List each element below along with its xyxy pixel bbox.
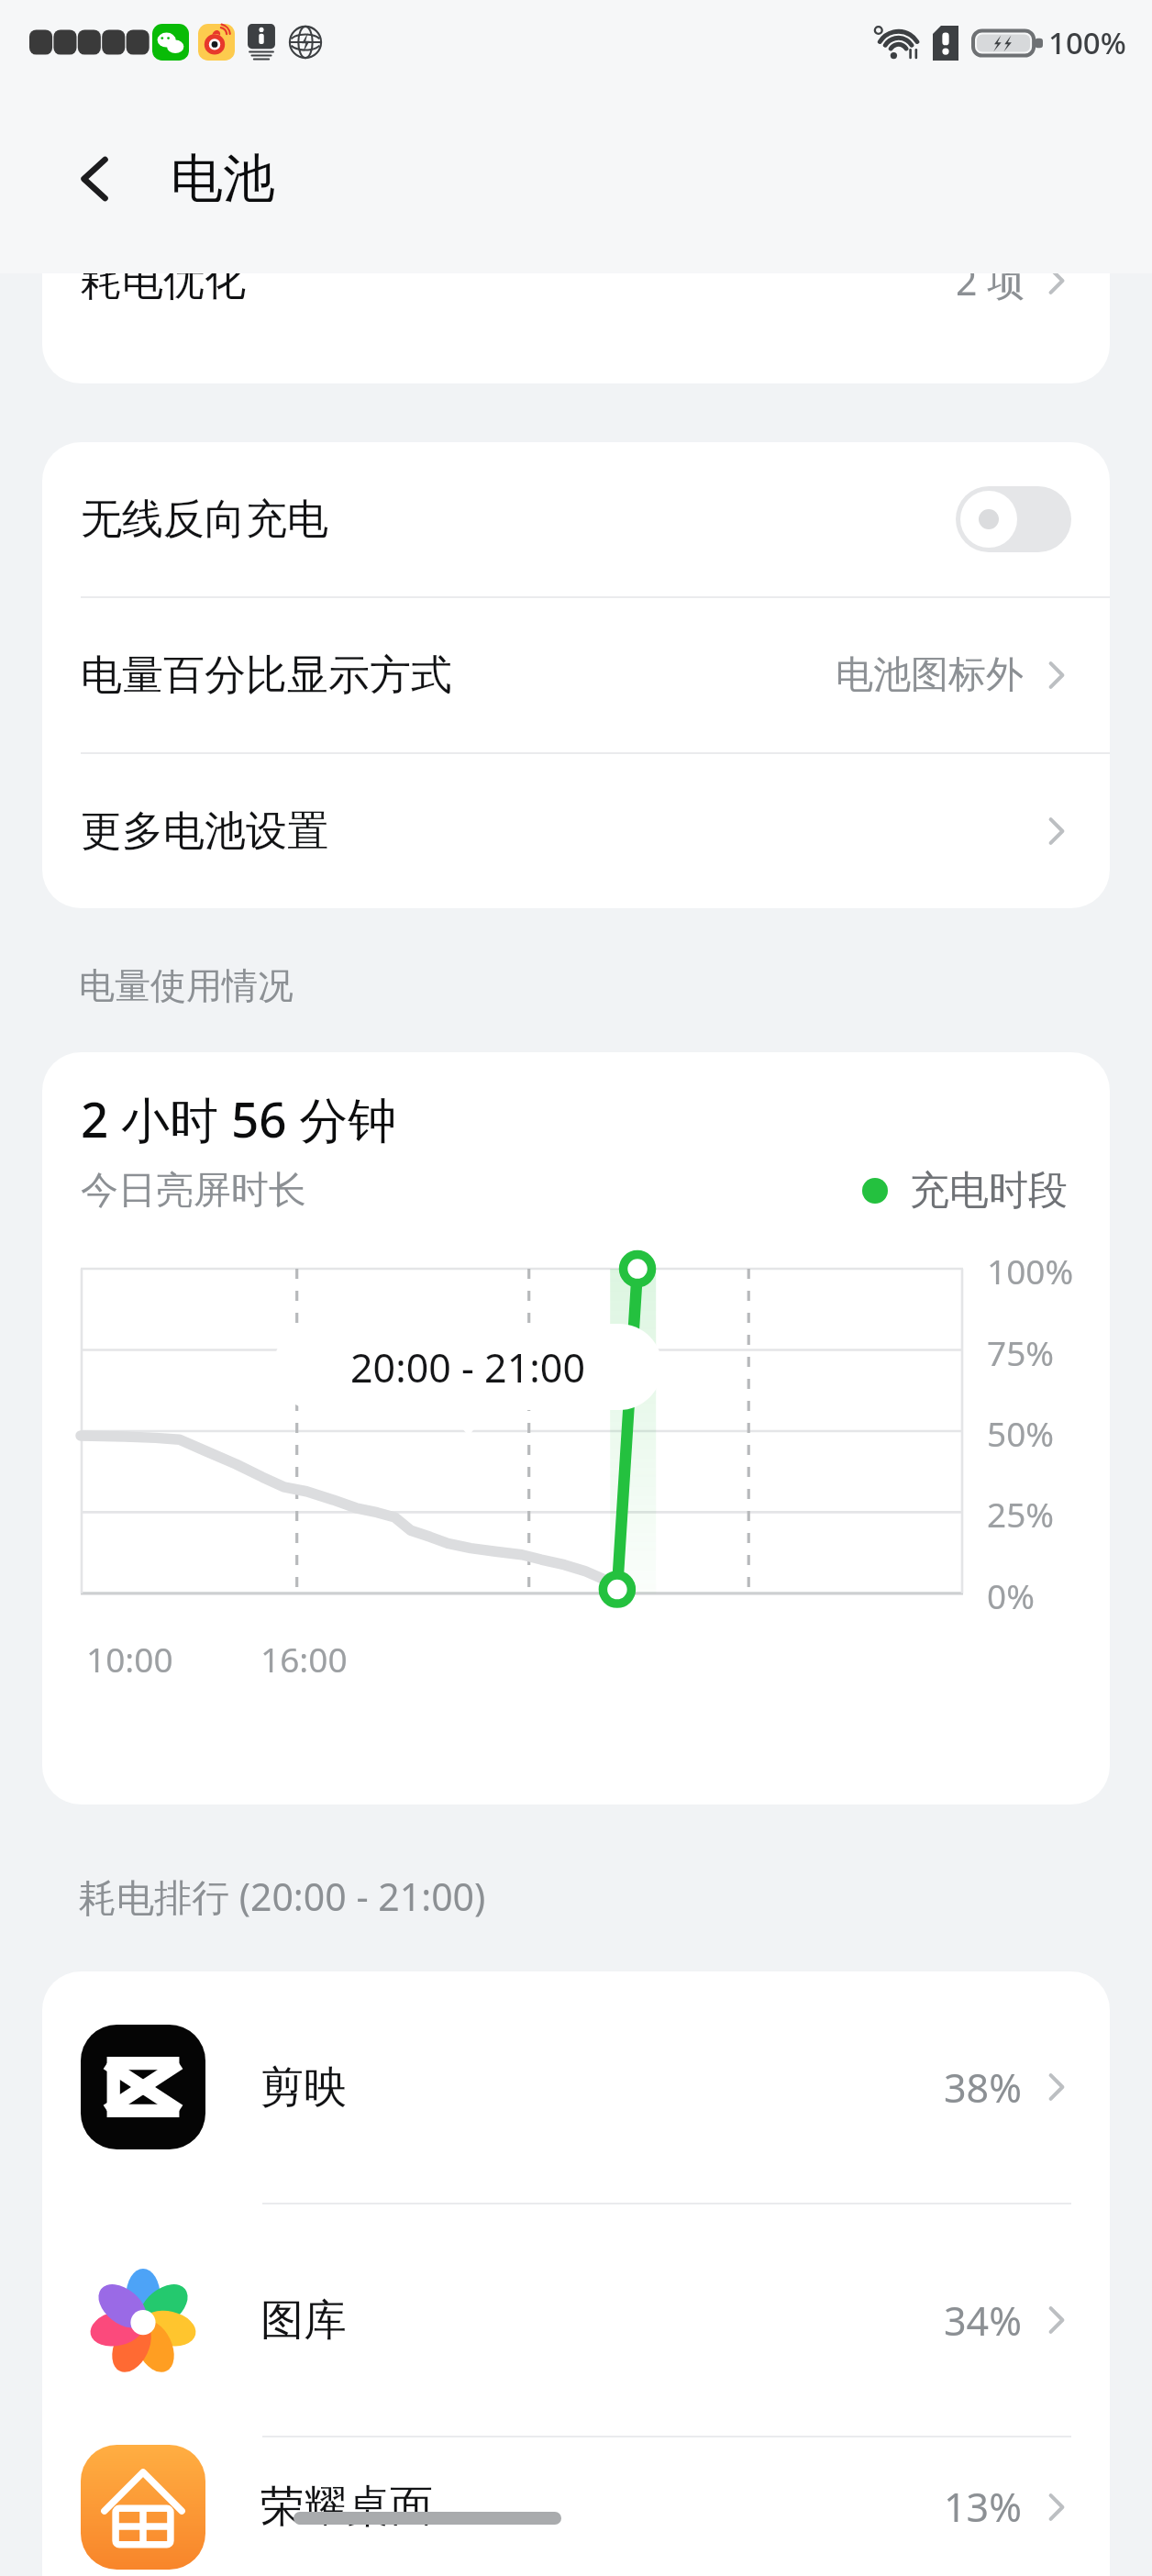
staticText: 耗电排行 (20:00 - 21:00)	[79, 1871, 486, 1922]
button[interactable]: 更多电池设置	[42, 754, 1110, 908]
button[interactable]: 图库	[42, 2204, 1110, 2436]
staticText: 100%	[987, 1248, 1074, 1294]
button[interactable]: 返回	[59, 142, 132, 216]
staticText: 16:00	[260, 1636, 348, 1682]
staticText: 2 小时 56 分钟	[81, 1085, 397, 1151]
staticText: 今日亮屏时长	[81, 1167, 306, 1215]
staticText: 电池	[171, 146, 275, 212]
staticText: 75%	[987, 1329, 1055, 1375]
button[interactable]: 无线反向充电	[42, 442, 1110, 596]
staticText: 耗电优化	[81, 273, 246, 307]
staticText: 图库	[260, 2293, 347, 2348]
staticText: 电量百分比显示方式	[81, 650, 452, 702]
staticText: 无线反向充电	[81, 494, 328, 546]
staticText: 13%	[944, 2480, 1022, 2534]
staticText: 34%	[944, 2293, 1022, 2348]
staticText: 38%	[944, 2060, 1022, 2115]
staticText: 电池图标外	[836, 651, 1024, 699]
staticText: 25%	[987, 1491, 1055, 1537]
staticText: 100%	[1048, 22, 1126, 63]
button[interactable]: 电量百分比显示方式	[42, 598, 1110, 752]
staticText: 10:00	[86, 1636, 173, 1682]
button[interactable]: 剪映	[42, 1971, 1110, 2203]
staticText: 0%	[987, 1572, 1035, 1618]
staticText: 2 项	[956, 273, 1025, 306]
button[interactable]: 耗电优化	[42, 273, 1110, 383]
button[interactable]: 荣耀桌面	[42, 2437, 1110, 2576]
staticText: 电量使用情况	[79, 963, 294, 1008]
staticText: 更多电池设置	[81, 805, 328, 858]
staticText: 50%	[987, 1410, 1055, 1456]
staticText: 充电时段	[910, 1166, 1068, 1216]
button[interactable]: 无线反向充电开关	[956, 486, 1071, 552]
staticText: 荣耀桌面	[260, 2480, 433, 2534]
staticText: 20:00 - 21:00	[350, 1340, 586, 1394]
staticText: 剪映	[260, 2060, 347, 2115]
